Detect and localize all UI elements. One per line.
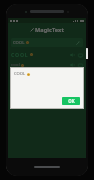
- staticText: COOL: [13, 40, 25, 46]
- button[interactable]: COOL: [8, 49, 86, 60]
- staticText: COOL: [11, 51, 29, 58]
- button[interactable]: cooool: [8, 70, 86, 80]
- staticText: MagicText: [35, 26, 64, 33]
- button[interactable]: OK: [62, 97, 80, 105]
- button[interactable]: Play: [69, 62, 75, 68]
- button[interactable]: Display: [77, 52, 83, 58]
- staticText: OK: [68, 98, 75, 104]
- staticText: cool: [11, 62, 20, 68]
- button[interactable]: Display: [77, 92, 83, 98]
- button[interactable]: Edit: [74, 39, 81, 46]
- button[interactable]: Play: [69, 102, 75, 108]
- button[interactable]: wow: [8, 90, 86, 100]
- button[interactable]: cloud9: [8, 80, 86, 90]
- staticText: COOL: [14, 71, 26, 77]
- button[interactable]: Play: [69, 92, 75, 98]
- button[interactable]: Display: [77, 62, 83, 68]
- button[interactable]: COOL: [11, 38, 83, 47]
- staticText: cooool: [11, 72, 26, 78]
- button[interactable]: Display: [77, 102, 83, 108]
- button[interactable]: HHHH: [8, 100, 86, 110]
- button[interactable]: cool: [8, 60, 86, 70]
- button[interactable]: Play: [69, 52, 75, 58]
